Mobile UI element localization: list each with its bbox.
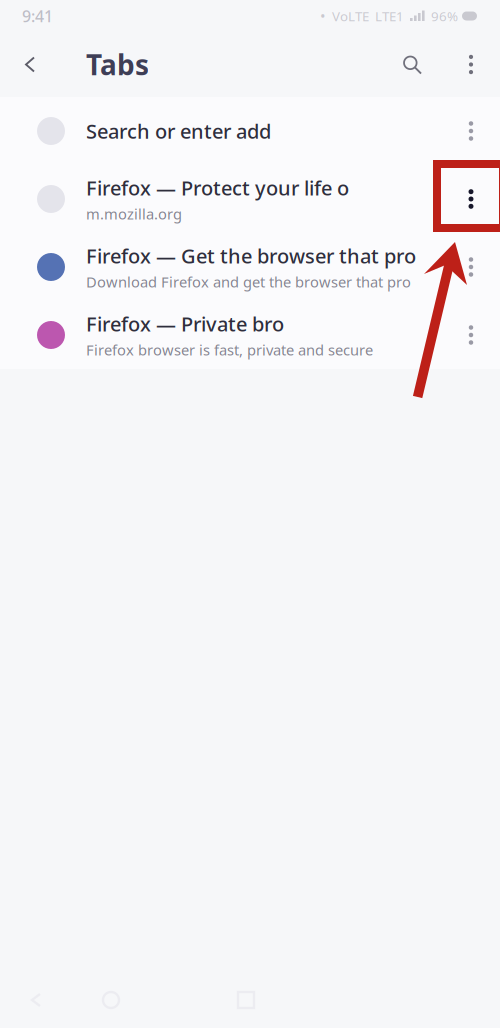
- staticText: •: [320, 6, 326, 26]
- button[interactable]: Firefox — Get the browser that pro: [0, 233, 500, 301]
- button[interactable]: More options for this tab: [451, 174, 491, 224]
- staticText: LTE1: [375, 7, 410, 25]
- button[interactable]: More options: [447, 39, 495, 89]
- staticText: Firefox — Protect your life o: [86, 174, 349, 201]
- button[interactable]: Firefox — Private bro: [0, 301, 500, 369]
- staticText: Firefox browser is fast, private and sec…: [86, 340, 373, 359]
- staticText: Search or enter add: [86, 118, 271, 144]
- button[interactable]: Search: [388, 39, 436, 89]
- button[interactable]: Back: [9, 39, 53, 89]
- staticText: Tabs: [86, 46, 149, 83]
- button[interactable]: More options for this tab: [451, 106, 491, 156]
- button[interactable]: Firefox — Protect your life o: [0, 165, 500, 233]
- button[interactable]: More options for this tab: [451, 310, 491, 360]
- staticText: 96%: [425, 7, 458, 25]
- staticText: Download Firefox and get the browser tha…: [86, 272, 411, 291]
- button[interactable]: Search or enter add: [0, 97, 500, 165]
- staticText: m.mozilla.org: [86, 204, 182, 223]
- staticText: 9:41: [22, 5, 53, 27]
- staticText: Firefox — Get the browser that pro: [86, 242, 416, 269]
- button[interactable]: More options for this tab: [451, 242, 491, 292]
- staticText: Firefox — Private bro: [86, 310, 284, 337]
- staticText: VoLTE: [326, 7, 375, 25]
